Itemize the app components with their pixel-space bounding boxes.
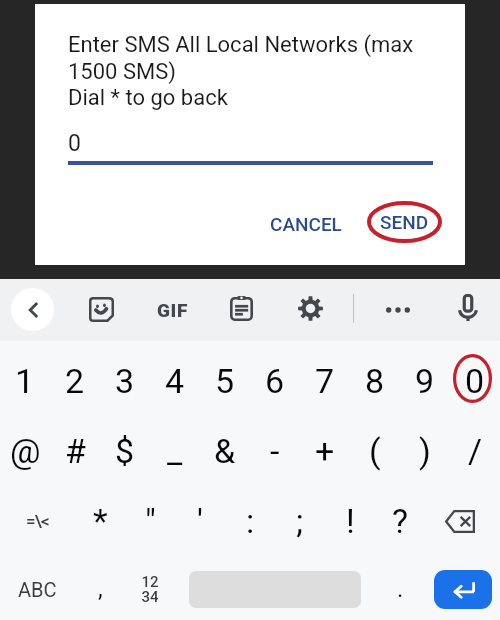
staticText: 2	[65, 361, 85, 401]
staticText: ABC	[18, 578, 57, 601]
button[interactable]: =\<	[0, 486, 75, 556]
staticText: 4	[165, 361, 185, 401]
button[interactable]: -	[250, 416, 300, 486]
button[interactable]: @	[0, 416, 50, 486]
button[interactable]: 12 34	[125, 554, 175, 620]
staticText: 0	[68, 130, 81, 157]
staticText: _	[167, 431, 183, 471]
staticText: &	[214, 431, 236, 471]
button[interactable]: More options	[386, 304, 410, 316]
button[interactable]: SEND	[367, 201, 442, 243]
staticText: ;	[296, 501, 304, 541]
button[interactable]: $	[100, 416, 150, 486]
staticText: )	[419, 431, 431, 471]
staticText: SEND	[380, 211, 429, 233]
button[interactable]: 5	[200, 346, 250, 416]
staticText: 8	[365, 361, 385, 401]
staticText: +	[315, 431, 335, 471]
button[interactable]: 0	[450, 346, 500, 416]
button[interactable]: #	[50, 416, 100, 486]
button[interactable]: Stickers	[89, 297, 114, 322]
staticText: -	[270, 431, 280, 471]
staticText: GIF	[157, 299, 188, 321]
staticText: 6	[265, 361, 285, 401]
staticText: #	[65, 431, 86, 471]
button[interactable]: 3	[100, 346, 150, 416]
button[interactable]: Clipboard	[230, 296, 253, 321]
button[interactable]: ,	[75, 554, 125, 620]
button[interactable]: &	[200, 416, 250, 486]
button[interactable]: ABC	[0, 554, 75, 620]
button[interactable]: Backspace	[425, 486, 500, 556]
button[interactable]: Settings	[298, 296, 323, 321]
button[interactable]: Space	[175, 554, 375, 620]
staticText: 3	[115, 361, 135, 401]
button[interactable]: _	[150, 416, 200, 486]
button[interactable]: 4	[150, 346, 200, 416]
button[interactable]: 9	[400, 346, 450, 416]
staticText: 7	[315, 361, 335, 401]
staticText: 9	[415, 361, 435, 401]
button[interactable]: 2	[50, 346, 100, 416]
staticText: 0	[465, 361, 485, 401]
staticText: "	[145, 501, 156, 541]
staticText: =\<	[26, 511, 49, 531]
button[interactable]: )	[400, 416, 450, 486]
button[interactable]: /	[450, 416, 500, 486]
staticText: ?	[392, 501, 409, 541]
button[interactable]: ?	[375, 486, 425, 556]
staticText: $	[115, 431, 135, 471]
button[interactable]: '	[175, 486, 225, 556]
button[interactable]: Enter	[434, 570, 492, 609]
staticText: ,	[98, 575, 103, 603]
button[interactable]: CANCEL	[258, 204, 354, 244]
staticText: (	[369, 431, 381, 471]
staticText: .	[397, 575, 404, 603]
button[interactable]: 6	[250, 346, 300, 416]
staticText: CANCEL	[270, 213, 342, 235]
button[interactable]: 8	[350, 346, 400, 416]
button[interactable]: 1	[0, 346, 50, 416]
button[interactable]: :	[225, 486, 275, 556]
staticText: '	[197, 501, 203, 541]
staticText: @	[10, 431, 41, 471]
button[interactable]: *	[75, 486, 125, 556]
staticText: 12 34	[141, 573, 159, 606]
button[interactable]: Back	[11, 288, 54, 331]
staticText: /	[468, 431, 483, 471]
button[interactable]: "	[125, 486, 175, 556]
button[interactable]: GIF	[151, 298, 193, 322]
staticText: !	[346, 501, 355, 541]
button[interactable]: !	[325, 486, 375, 556]
staticText: 1	[15, 361, 35, 401]
button[interactable]: (	[350, 416, 400, 486]
staticText: 5	[215, 361, 235, 401]
staticText: :	[246, 501, 255, 541]
button[interactable]: Voice input	[457, 295, 479, 321]
button[interactable]: +	[300, 416, 350, 486]
staticText: *	[93, 501, 108, 541]
button[interactable]: ;	[275, 486, 325, 556]
button[interactable]: 7	[300, 346, 350, 416]
staticText: Enter SMS All Local Networks (max 1500 S…	[68, 32, 468, 110]
button[interactable]: .	[375, 554, 425, 620]
